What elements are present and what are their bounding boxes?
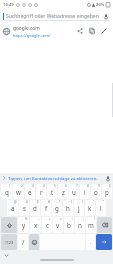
staticText: u (72, 188, 76, 196)
staticText: 26% (96, 2, 105, 8)
staticText: 7 (76, 184, 78, 188)
staticText: d (33, 204, 37, 212)
button[interactable]: v (53, 217, 63, 233)
button[interactable]: x (30, 217, 41, 233)
button[interactable]: c (42, 217, 52, 233)
button[interactable]: l (96, 200, 106, 216)
button[interactable]: Kopieren (86, 25, 98, 37)
button[interactable]: q (1, 184, 12, 199)
button[interactable]: b (64, 217, 74, 233)
staticText: " (103, 200, 105, 204)
staticText: v (56, 221, 60, 229)
staticText: = (60, 217, 62, 221)
button[interactable]: u (69, 184, 79, 199)
staticText: https://google.com/ (13, 33, 51, 38)
button[interactable]: d (30, 200, 40, 216)
button[interactable]: Emoji (29, 234, 39, 250)
staticText: Tippen, um Kontaktvorschläge zu aktivier… (8, 175, 98, 181)
staticText: @ (14, 200, 17, 204)
staticText: 3 (32, 184, 34, 188)
staticText: w (16, 188, 21, 196)
staticText: z (62, 188, 65, 196)
button[interactable]: / (18, 234, 28, 250)
button[interactable]: Umschalt (1, 217, 17, 233)
staticText: 1 (9, 184, 11, 188)
button[interactable]: Spracheingabe (104, 175, 111, 182)
button[interactable]: google.com (0, 23, 113, 39)
staticText: ?123 (5, 240, 14, 245)
button[interactable]: f (41, 200, 51, 216)
button[interactable]: m (86, 217, 96, 233)
staticText: o (94, 188, 98, 196)
staticText: c (46, 221, 49, 229)
staticText: ! (94, 217, 95, 221)
staticText: 16:49 (3, 2, 14, 8)
button[interactable]: e (25, 184, 35, 199)
staticText: a (11, 204, 15, 212)
staticText: l (100, 204, 102, 212)
staticText: # (26, 200, 28, 204)
button[interactable]: Los (96, 234, 112, 250)
staticText: / (22, 238, 25, 246)
button[interactable]: Tippen, um Kontaktvorschläge zu aktivier… (0, 173, 113, 183)
button[interactable]: o (91, 184, 101, 199)
button[interactable]: n (75, 217, 85, 233)
button[interactable]: Teilen (74, 25, 86, 37)
staticText: i (84, 188, 86, 196)
button[interactable]: Sprachsuche (101, 12, 110, 21)
staticText: - (38, 217, 39, 221)
staticText: 8 (87, 184, 89, 188)
staticText: x (34, 221, 38, 229)
button[interactable]: t (47, 184, 57, 199)
staticText: p (105, 188, 109, 196)
button[interactable]: y (18, 217, 29, 233)
staticText: 2 (21, 184, 23, 188)
staticText: 4 (43, 184, 45, 188)
staticText: ' (93, 200, 94, 204)
button[interactable]: Suchbegriff oder Webadresse eingeben (3, 11, 110, 21)
staticText: n (78, 221, 82, 229)
staticText: . (90, 239, 92, 246)
staticText: f (45, 204, 48, 212)
button[interactable]: p (102, 184, 112, 199)
staticText: g (55, 204, 59, 212)
button[interactable]: z (58, 184, 68, 199)
button[interactable]: k (85, 200, 95, 216)
staticText: Suchbegriff oder Webadresse eingeben (6, 13, 99, 20)
staticText: r (40, 188, 43, 196)
button[interactable]: a (7, 200, 18, 216)
button[interactable]: Löschen (97, 217, 112, 233)
staticText: b (67, 221, 71, 229)
staticText: google.com (13, 25, 40, 32)
staticText: ) (82, 200, 83, 204)
staticText: k (88, 204, 92, 212)
button[interactable]: i (80, 184, 90, 199)
staticText: * (59, 200, 61, 204)
staticText: ; (83, 217, 84, 221)
staticText: $ (37, 200, 39, 204)
staticText: y (22, 221, 26, 229)
button[interactable]: s (19, 200, 29, 216)
staticText: % (25, 217, 28, 221)
button[interactable]: g (52, 200, 62, 216)
staticText: 6 (65, 184, 67, 188)
button[interactable]: . (86, 234, 95, 250)
button[interactable]: r (36, 184, 46, 199)
staticText: m (88, 221, 94, 229)
button[interactable]: j (74, 200, 84, 216)
staticText: 5 (54, 184, 56, 188)
staticText: q (5, 188, 9, 196)
staticText: ( (71, 200, 72, 204)
staticText: h (66, 204, 70, 212)
button[interactable]: h (63, 200, 73, 216)
staticText: 0 (109, 184, 111, 188)
button[interactable]: Bearbeiten (98, 25, 110, 37)
button[interactable]: w (13, 184, 24, 199)
button[interactable]: ?123 (1, 234, 17, 250)
staticText: & (48, 200, 51, 204)
staticText: j (78, 204, 80, 212)
staticText: t (51, 188, 54, 196)
button[interactable]: Tastatur schließen (3, 252, 10, 259)
staticText: e (28, 188, 32, 196)
